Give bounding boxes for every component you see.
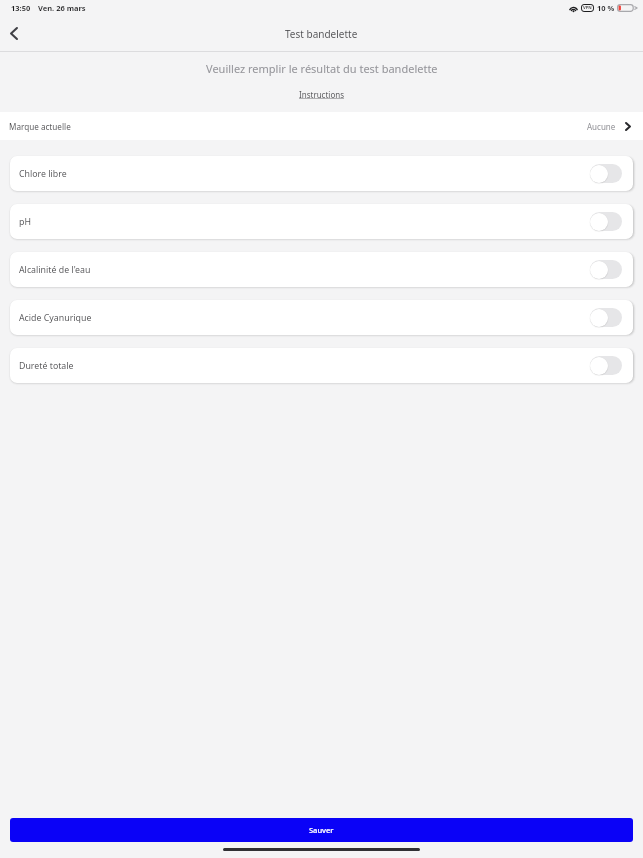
staticText: Dureté totale <box>19 360 74 372</box>
staticText: Test bandelette <box>285 27 358 41</box>
staticText: Acide Cyanurique <box>19 312 92 324</box>
button[interactable]: pH <box>10 204 633 239</box>
button[interactable]: Activer <box>590 356 622 375</box>
staticText: Instructions <box>299 89 345 100</box>
button[interactable]: Acide Cyanurique <box>10 300 633 335</box>
button[interactable]: Activer <box>590 164 622 183</box>
staticText: 10 % <box>597 3 615 13</box>
button[interactable]: Marque actuelle <box>0 112 643 140</box>
button[interactable]: Chlore libre <box>10 156 633 191</box>
staticText: pH <box>19 216 31 228</box>
staticText: Veuillez remplir le résultat du test ban… <box>206 61 438 76</box>
staticText: VPN <box>583 5 592 11</box>
staticText: Sauver <box>309 825 334 835</box>
staticText: Alcalinité de l'eau <box>19 264 91 276</box>
button[interactable]: Activer <box>590 212 622 231</box>
button[interactable]: Dureté totale <box>10 348 633 383</box>
staticText: Chlore libre <box>19 168 67 180</box>
staticText: Ven. 26 mars <box>38 3 86 13</box>
button[interactable]: Alcalinité de l'eau <box>10 252 633 287</box>
button[interactable]: Activer <box>590 260 622 279</box>
button[interactable]: Activer <box>590 308 622 327</box>
button[interactable]: Instructions <box>297 88 347 101</box>
button[interactable]: Sauver <box>10 818 633 842</box>
staticText: Aucune <box>587 121 616 132</box>
staticText: 13:50 <box>11 3 31 13</box>
button[interactable]: Retour <box>3 22 25 44</box>
staticText: Marque actuelle <box>9 121 71 132</box>
